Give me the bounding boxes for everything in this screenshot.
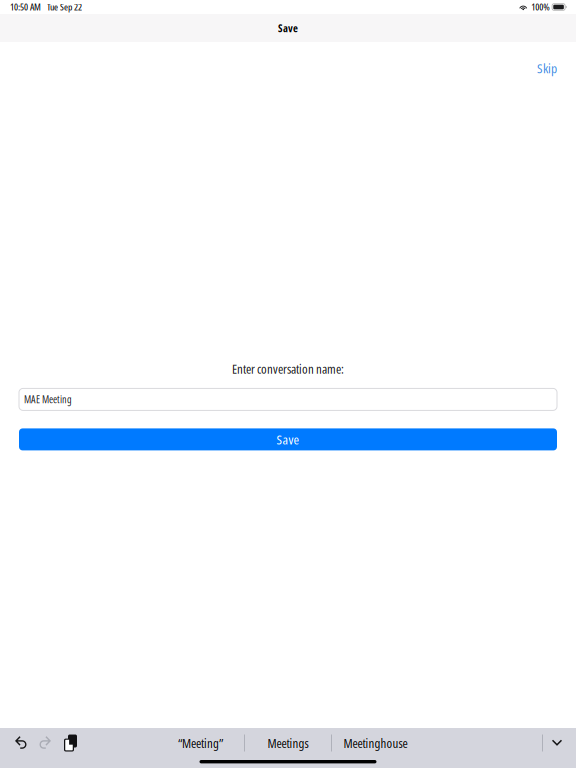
staticText: “Meeting” (178, 734, 223, 752)
staticText: Skip (537, 59, 557, 77)
staticText: Save (278, 21, 298, 35)
button[interactable]: Meetinghouse (332, 728, 419, 758)
staticText: 10:50 AM (10, 1, 41, 13)
button[interactable]: Meetings (245, 728, 331, 758)
staticText: Tue Sep 22 (47, 1, 82, 13)
staticText: Meetinghouse (343, 734, 407, 752)
button[interactable]: Save (0, 410, 576, 450)
staticText: MAE Meeting (24, 393, 72, 406)
staticText: 100% (531, 1, 550, 13)
staticText: Meetings (267, 734, 308, 752)
staticText: Enter conversation name: (232, 360, 344, 377)
button[interactable]: “Meeting” (157, 728, 244, 758)
button[interactable]: Skip (527, 42, 576, 85)
button[interactable]: Paste (64, 728, 87, 758)
button[interactable]: Hide keyboard (543, 728, 576, 758)
staticText: Save (276, 430, 299, 448)
button[interactable]: Redo (40, 728, 64, 758)
button[interactable]: Undo (0, 728, 40, 758)
